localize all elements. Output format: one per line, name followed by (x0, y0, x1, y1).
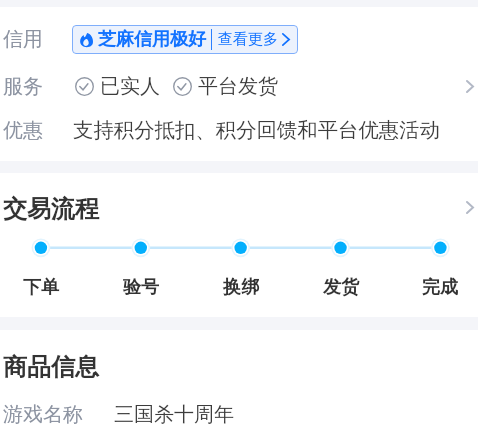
button[interactable]: 交易流程 (0, 187, 478, 231)
staticText: 下单 (23, 276, 59, 299)
staticText: 芝麻信用极好 (98, 28, 206, 51)
button[interactable]: 服务 (0, 64, 478, 108)
staticText: 优惠 (3, 118, 73, 143)
staticText: 信用 (3, 27, 72, 52)
staticText: 支持积分抵扣、积分回馈和平台优惠活动 (73, 117, 441, 143)
staticText: 商品信息 (3, 352, 99, 382)
staticText: 验号 (123, 276, 159, 299)
staticText: 换绑 (223, 276, 259, 299)
button[interactable]: 芝麻信用极好 (72, 25, 298, 54)
staticText: 游戏名称 (3, 402, 114, 427)
staticText: 已实人 (100, 74, 160, 99)
staticText: 服务 (3, 74, 75, 99)
staticText: 平台发货 (198, 74, 278, 99)
staticText: 完成 (422, 276, 458, 299)
other: 查看服务详情 (466, 80, 474, 93)
other: 查看交易流程 (466, 201, 474, 214)
staticText: 发货 (323, 276, 359, 299)
staticText: 查看更多 (218, 30, 278, 49)
staticText: 交易流程 (3, 194, 99, 224)
staticText: 三国杀十周年 (114, 402, 234, 427)
